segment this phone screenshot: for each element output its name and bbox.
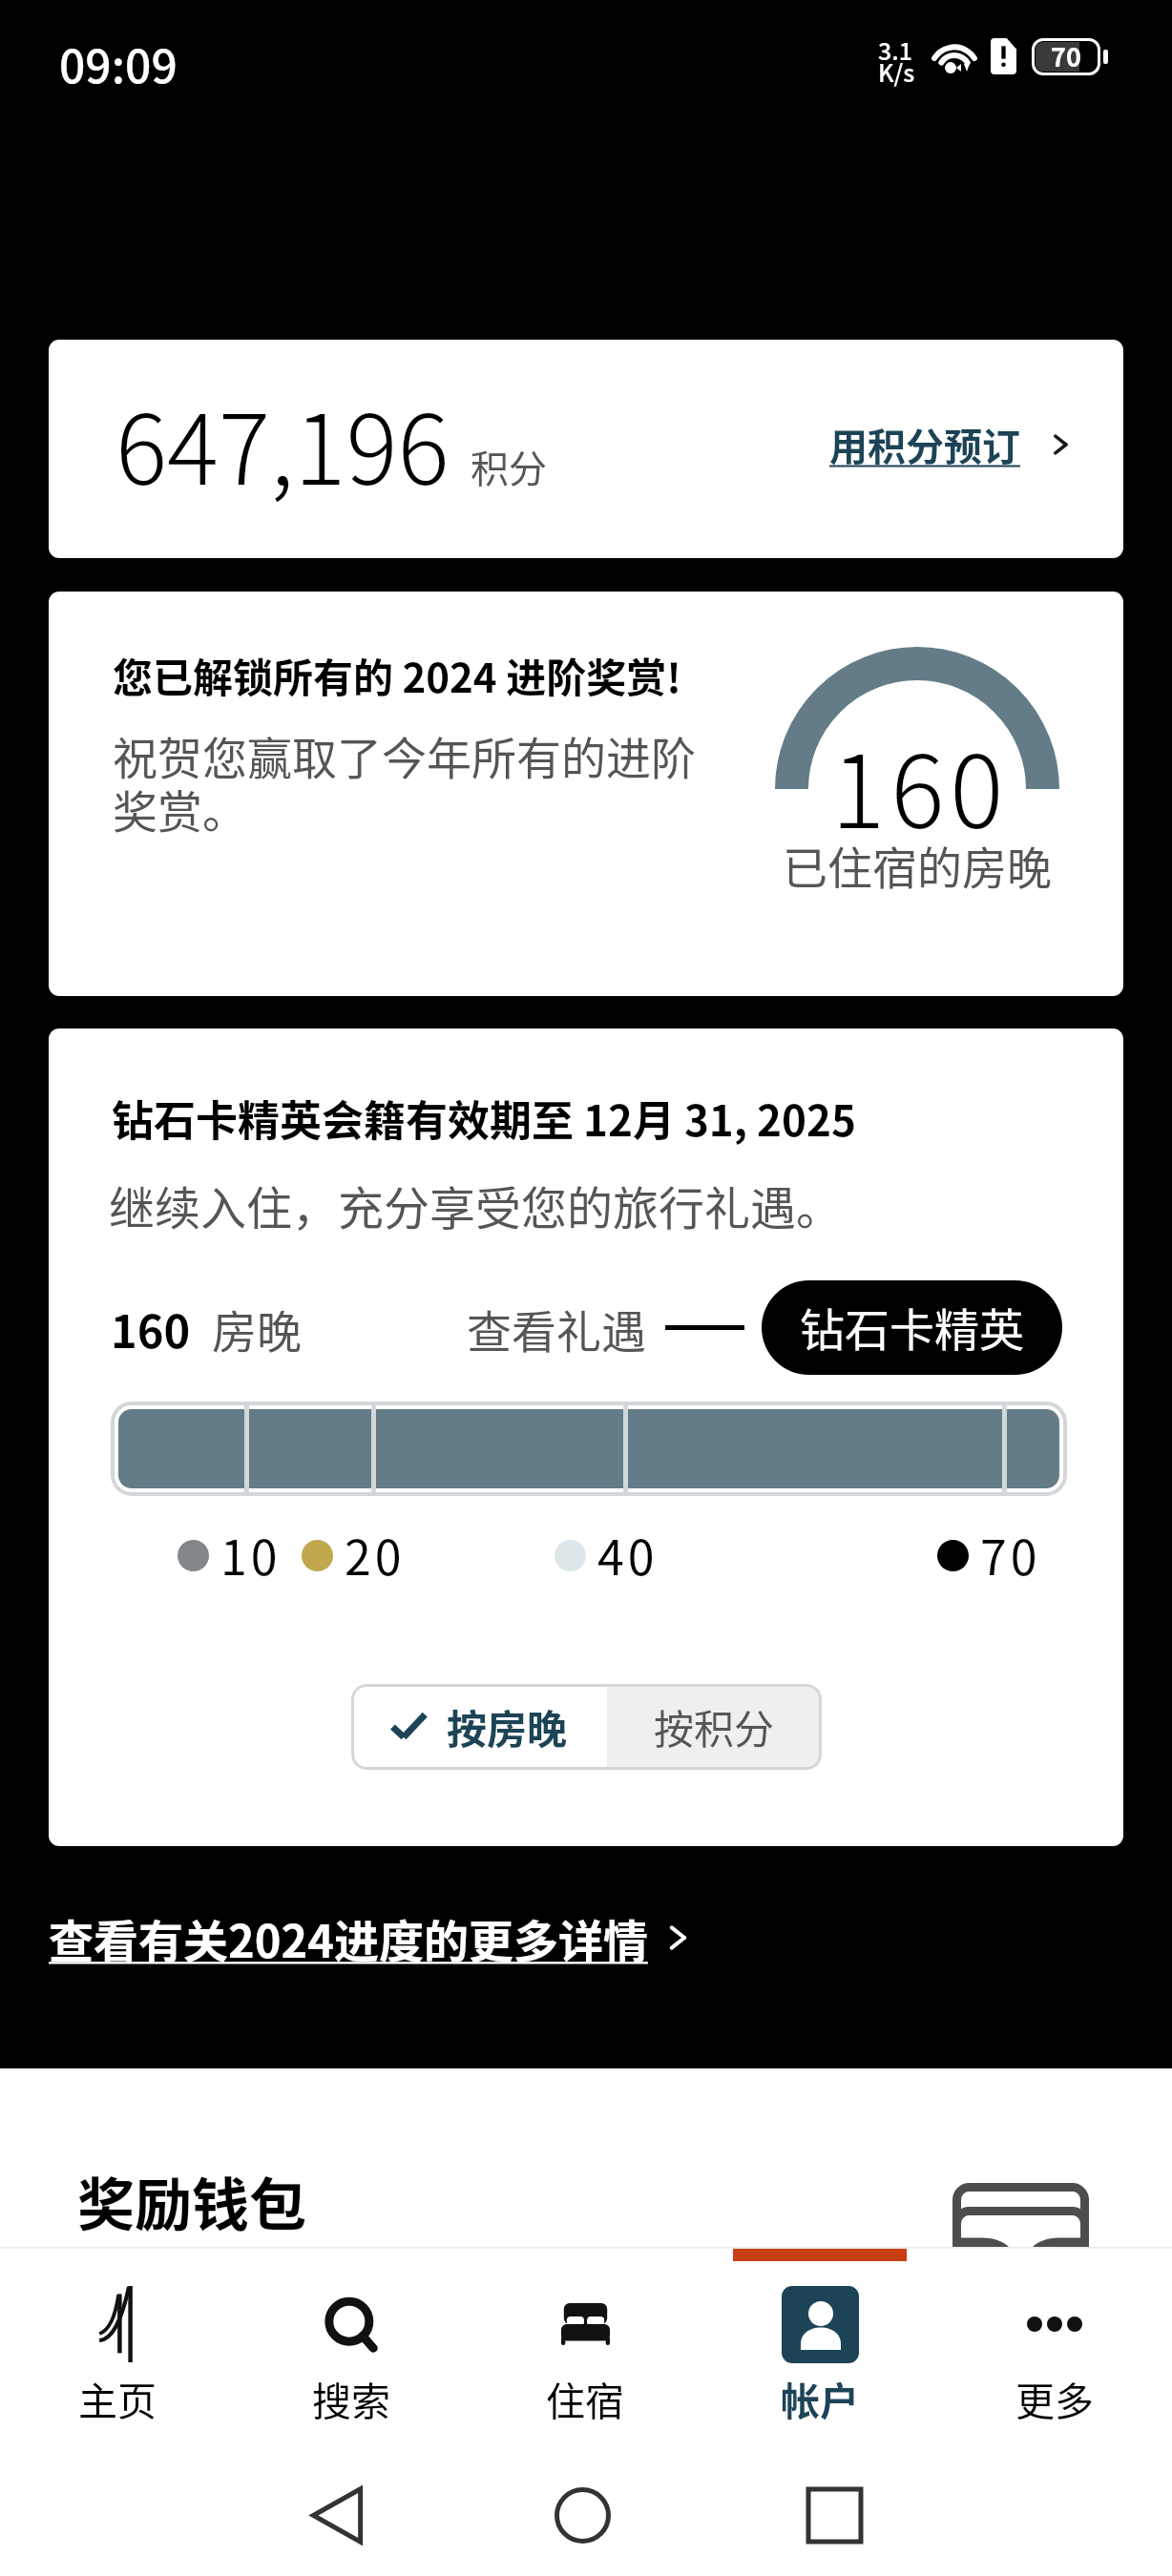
button[interactable]: 住宿 (468, 2249, 702, 2436)
button[interactable]: 帐户 (702, 2249, 937, 2436)
staticText: 搜索 (312, 2370, 390, 2426)
staticText: 160 (111, 1296, 191, 1361)
staticText: 奖励钱包 (77, 2159, 306, 2242)
button[interactable]: Home (534, 2467, 630, 2563)
staticText: 10 (220, 1520, 282, 1587)
staticText: 帐户 (781, 2370, 859, 2426)
staticText: 主页 (78, 2370, 157, 2426)
button[interactable]: 查看有关2024进度的更多详情 (49, 1905, 689, 1970)
staticText: 160 (831, 712, 1010, 854)
staticText: 已住宿的房晚 (783, 832, 1052, 897)
staticText: 647,196 (115, 373, 450, 512)
staticText: 70 (1051, 37, 1081, 74)
staticText: 房晚 (212, 1296, 302, 1361)
button[interactable]: 更多 (937, 2249, 1172, 2436)
staticText: 钻石卡精英 (800, 1294, 1024, 1359)
staticText: 按积分 (654, 1697, 775, 1755)
staticText: 3.1 K/s (878, 32, 915, 90)
staticText: 20 (345, 1520, 406, 1587)
staticText: 按房晚 (447, 1697, 568, 1755)
button[interactable]: 主页 (0, 2249, 234, 2436)
button[interactable]: 用积分预订 (829, 417, 1070, 472)
staticText: 查看有关2024进度的更多详情 (49, 1905, 648, 1970)
staticText: 祝贺您赢取了今年所有的进阶 奖赏。 (113, 722, 696, 841)
staticText: 09:09 (59, 30, 178, 96)
staticText: 继续入住，充分享受您的旅行礼遇。 (109, 1172, 843, 1238)
button[interactable]: Rewards wallet cards (952, 2183, 1089, 2247)
button[interactable]: 按房晚 (351, 1684, 607, 1770)
button[interactable]: Back (289, 2467, 385, 2563)
button[interactable]: Recent apps (786, 2467, 882, 2563)
staticText: 积分 (471, 439, 547, 494)
staticText: 70 (980, 1520, 1041, 1587)
staticText: 更多 (1015, 2370, 1094, 2426)
staticText: 钻石卡精英会籍有效期至 12月 31, 2025 (112, 1088, 856, 1149)
staticText: 您已解锁所有的 2024 进阶奖赏! (113, 646, 681, 704)
button[interactable]: 搜索 (234, 2249, 468, 2436)
button[interactable]: 钻石卡精英 (762, 1280, 1062, 1375)
staticText: 用积分预订 (829, 417, 1020, 472)
staticText: 40 (597, 1520, 659, 1587)
staticText: 查看礼遇 (467, 1296, 646, 1361)
button[interactable]: 按积分 (607, 1684, 822, 1770)
staticText: 住宿 (546, 2370, 624, 2426)
